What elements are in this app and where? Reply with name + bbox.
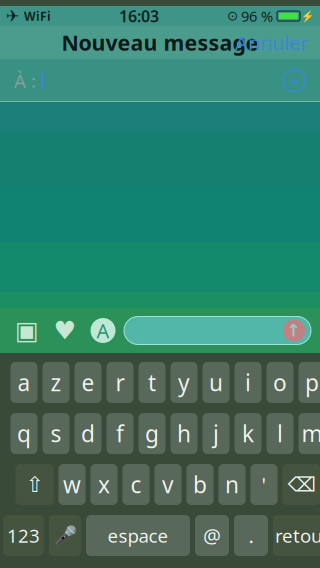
staticText: r [115,367,124,397]
staticText: l [277,418,283,448]
button[interactable]: f [106,413,133,454]
staticText: + [288,66,300,95]
staticText: 123 [7,523,40,548]
staticText: ⊙ [227,8,238,23]
staticText: Annuler [235,29,308,56]
staticText: m [301,418,320,448]
button[interactable]: 123 [3,515,44,556]
staticText: z [50,367,61,397]
button[interactable]: t [138,362,165,403]
staticText: ▣ [15,316,39,345]
staticText: q [17,418,31,448]
button[interactable]: r [106,362,133,403]
button[interactable]: q [10,413,37,454]
staticText: x [98,469,110,499]
button[interactable]: v [154,464,181,505]
staticText: 96 % [241,6,273,26]
staticText: v [162,469,174,499]
staticText: Nouveau message [61,28,258,57]
staticText: h [177,418,191,448]
staticText: ↑ [286,321,301,340]
button[interactable]: e [74,362,101,403]
staticText: e [81,367,94,397]
staticText: j [213,418,219,448]
button[interactable]: g [138,413,165,454]
button[interactable]: Ajouter un contact [274,60,314,100]
staticText: ⇧ [25,472,43,497]
button[interactable]: z [42,362,69,403]
button[interactable]: y [170,362,197,403]
staticText: t [148,367,156,397]
staticText: k [242,418,254,448]
staticText: g [145,418,159,448]
button[interactable]: w [58,464,85,505]
button[interactable]: l [266,413,293,454]
staticText: c [130,469,141,499]
button[interactable]: a [10,362,37,403]
button[interactable]: k [234,413,261,454]
staticText: ' [261,471,266,498]
staticText: ⌫ [287,473,315,496]
staticText: p [305,367,319,397]
button[interactable]: c [122,464,149,505]
staticText: @ [203,522,221,549]
button[interactable]: x [90,464,117,505]
button[interactable]: ⇧ [15,464,53,505]
staticText: À : [14,68,36,93]
button[interactable]: Annuler [227,23,316,62]
button[interactable]: j [202,413,229,454]
staticText: . [248,522,253,549]
staticText: a [17,367,30,397]
button[interactable]: retour [273,515,320,556]
button[interactable]: espace [86,515,190,556]
staticText: ♥ [53,316,76,345]
button[interactable]: Appareil photo [10,310,44,350]
staticText: retour [275,523,320,548]
button[interactable]: i [234,362,261,403]
staticText: ⚡ [301,10,314,22]
staticText: n [225,469,239,499]
staticText: u [209,367,223,397]
staticText: d [81,418,95,448]
button[interactable]: ⌫ [282,464,320,505]
button[interactable]: b [186,464,213,505]
staticText: f [116,418,124,448]
button[interactable]: 🎤 [49,515,81,556]
button[interactable]: o [266,362,293,403]
button[interactable]: Digital Touch [48,310,82,350]
button[interactable]: Envoyer [279,315,309,345]
staticText: WiFi [24,8,51,24]
staticText: w [63,469,81,499]
button[interactable]: h [170,413,197,454]
button[interactable]: n [218,464,245,505]
button[interactable]: App Store [86,310,120,350]
staticText: ✈ [6,7,19,25]
staticText: y [178,367,190,397]
staticText: b [193,469,207,499]
staticText: o [273,367,287,397]
button[interactable]: . [234,515,268,556]
button[interactable]: u [202,362,229,403]
button[interactable]: p [298,362,320,403]
staticText: espace [107,523,168,548]
staticText: s [50,418,61,448]
staticText: 🎤 [53,525,76,546]
button[interactable]: d [74,413,101,454]
staticText: A [96,317,109,344]
button[interactable]: @ [195,515,229,556]
button[interactable]: s [42,413,69,454]
staticText: 16:03 [119,5,159,27]
staticText: i [245,367,251,397]
button[interactable]: ' [250,464,277,505]
button[interactable]: m [298,413,320,454]
